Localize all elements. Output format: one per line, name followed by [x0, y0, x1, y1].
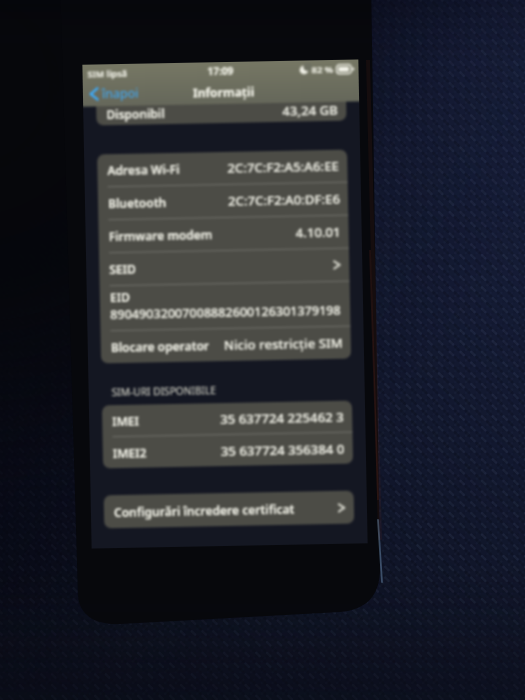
staticText: Adresa Wi-Fi — [107, 161, 181, 178]
button[interactable]: Blocare operator — [100, 327, 351, 363]
staticText: 2C:7C:F2:A5:A6:EE — [227, 157, 339, 177]
button[interactable]: IMEI — [102, 401, 352, 436]
button[interactable]: Bluetooth — [98, 183, 348, 219]
staticText: Blocare operator — [111, 337, 210, 355]
staticText: Nicio restricție SIM — [224, 334, 343, 354]
staticText: 17:09 — [207, 64, 234, 78]
staticText: Configurări încredere certificat — [114, 501, 295, 520]
button[interactable]: SEID — [99, 249, 350, 285]
staticText: Disponibil — [106, 105, 165, 122]
staticText: 35 637724 356384 0 — [221, 440, 345, 460]
button[interactable]: Adresa Wi-Fi — [97, 150, 348, 186]
button[interactable]: Back — [83, 80, 145, 107]
staticText: SEID — [109, 261, 136, 277]
button[interactable]: Firmware modem — [98, 216, 349, 252]
staticText: SIM lipsă — [87, 67, 128, 80]
staticText: 89049032007008882600126301379198 — [110, 302, 341, 323]
button[interactable]: IMEI2 — [102, 433, 353, 468]
other: Back — [89, 85, 99, 103]
staticText: 4.10.01 — [295, 223, 341, 242]
staticText: Informații — [193, 83, 255, 101]
staticText: Bluetooth — [108, 194, 167, 211]
button[interactable]: EID — [100, 282, 350, 330]
button[interactable]: Configurări încredere certificat — [104, 491, 354, 528]
staticText: Firmware modem — [108, 226, 213, 244]
staticText: 43,24 GB — [282, 102, 338, 120]
staticText: 2C:7C:F2:A0:DF:E6 — [228, 190, 340, 210]
staticText: EID — [110, 289, 130, 305]
staticText: IMEI2 — [113, 444, 147, 461]
staticText: 82 % — [311, 63, 334, 76]
staticText: 35 637724 225462 3 — [220, 408, 344, 428]
staticText: înapoi — [102, 85, 139, 102]
button[interactable]: Disponibil — [96, 102, 346, 125]
staticText: SIM-URI DISPONIBILE — [111, 383, 217, 399]
staticText: IMEI — [112, 413, 139, 429]
